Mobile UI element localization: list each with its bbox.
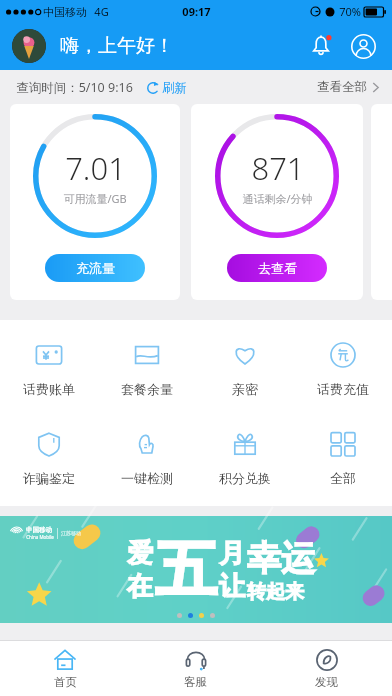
staticText: 查询时间：5/10 9:16: [16, 79, 133, 96]
staticText: 可用流量/GB: [63, 191, 127, 206]
staticText: 月: [219, 537, 245, 570]
staticText: 871: [251, 147, 305, 189]
button[interactable]: 去查看: [227, 254, 327, 282]
button[interactable]: 首页: [0, 641, 130, 696]
staticText: 查看全部: [317, 79, 367, 95]
staticText: 09:17: [182, 4, 211, 19]
staticText: 刷新: [162, 80, 187, 96]
staticText: 去查看: [258, 260, 297, 276]
button[interactable]: Profile avatar: [12, 29, 46, 63]
staticText: 充流量: [76, 260, 115, 276]
button[interactable]: 积分兑换: [196, 423, 294, 492]
staticText: 中国移动: [26, 526, 52, 534]
staticText: China Mobile: [26, 534, 54, 540]
button[interactable]: 一键检测: [98, 423, 196, 492]
staticText: 让: [219, 570, 245, 603]
button[interactable]: 话费账单: [0, 334, 98, 403]
staticText: 幸运: [247, 537, 315, 580]
button[interactable]: 全部: [294, 423, 392, 492]
button[interactable]: 查看全部: [317, 79, 380, 95]
staticText: 话费账单: [23, 381, 75, 397]
button[interactable]: Account: [348, 31, 378, 61]
button[interactable]: 客服: [130, 641, 261, 696]
staticText: 在: [127, 570, 153, 603]
button[interactable]: 7.01: [10, 104, 180, 300]
staticText: 转起来: [247, 580, 304, 604]
staticText: 70%: [339, 4, 361, 19]
staticText: 积分兑换: [219, 470, 271, 486]
staticText: 发现: [315, 675, 338, 689]
button[interactable]: 查询时间：5/10 9:16: [16, 79, 187, 96]
staticText: 套餐余量: [121, 381, 173, 397]
staticText: 嗨，上午好！: [60, 34, 174, 58]
staticText: 爱: [127, 537, 153, 570]
button[interactable]: Notifications: [306, 31, 336, 61]
staticText: 诈骗鉴定: [23, 470, 75, 486]
staticText: 全部: [330, 470, 356, 486]
button[interactable]: 套餐余量: [98, 334, 196, 403]
staticText: 客服: [184, 675, 207, 689]
staticText: 中国移动: [43, 5, 87, 19]
button[interactable]: 871: [191, 104, 363, 300]
staticText: 4G: [94, 4, 109, 19]
staticText: 7.01: [65, 147, 126, 189]
button[interactable]: 亲密: [196, 334, 294, 403]
staticText: 一键检测: [121, 470, 173, 486]
button[interactable]: 话费充值: [294, 334, 392, 403]
button[interactable]: 诈骗鉴定: [0, 423, 98, 492]
button[interactable]: Promotion banner: [0, 516, 392, 623]
staticText: 首页: [54, 675, 77, 689]
staticText: 亲密: [232, 381, 258, 397]
staticText: 江苏移动: [61, 530, 81, 536]
staticText: 话费充值: [317, 381, 369, 397]
staticText: 通话剩余/分钟: [242, 191, 313, 206]
staticText: 五: [155, 531, 217, 609]
button[interactable]: 发现: [261, 641, 392, 696]
button[interactable]: 充流量: [45, 254, 145, 282]
